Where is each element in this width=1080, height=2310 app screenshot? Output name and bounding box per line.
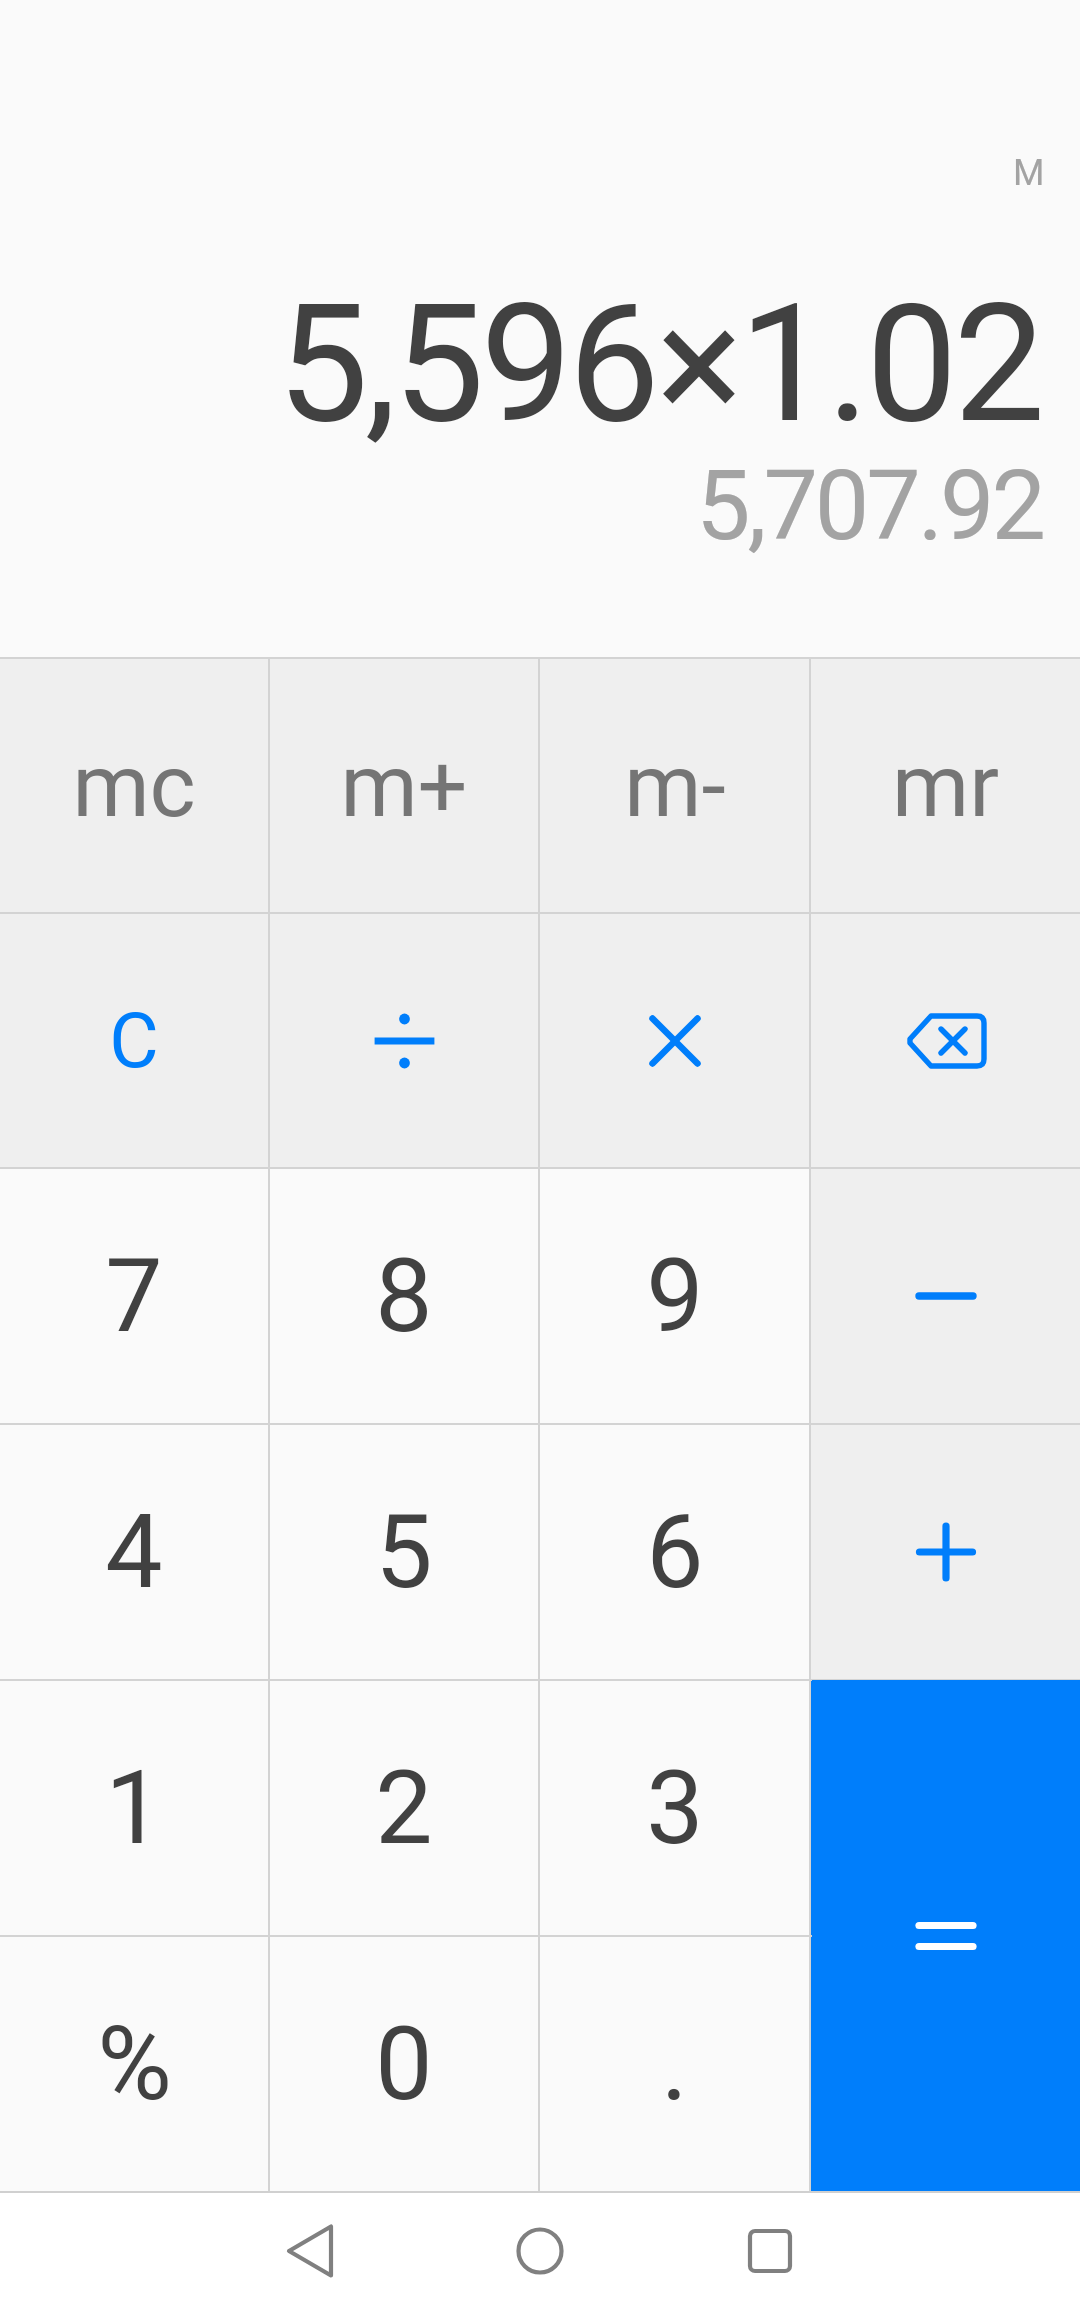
button[interactable]: %: [0, 1937, 268, 2191]
button[interactable]: 9: [540, 1169, 809, 1423]
button[interactable]: 5: [270, 1425, 538, 1679]
button[interactable]: 6: [540, 1425, 809, 1679]
staticText: mc: [72, 734, 196, 837]
staticText: 4: [105, 1492, 163, 1612]
button[interactable]: Back: [250, 2191, 370, 2310]
button[interactable]: 0: [270, 1937, 538, 2191]
button[interactable]: mr: [811, 659, 1080, 912]
button[interactable]: 4: [0, 1425, 268, 1679]
button[interactable]: Plus: [811, 1425, 1080, 1679]
button[interactable]: mc: [0, 659, 268, 912]
button[interactable]: Home: [480, 2191, 600, 2310]
staticText: M: [1013, 152, 1045, 194]
staticText: mr: [892, 734, 999, 837]
button[interactable]: Backspace: [811, 914, 1080, 1167]
staticText: 5,707.92: [696, 449, 1043, 563]
staticText: 5: [375, 1492, 433, 1612]
staticText: 0: [375, 2004, 433, 2124]
staticText: 8: [375, 1236, 433, 1356]
button[interactable]: Multiply: [540, 914, 809, 1167]
staticText: .: [661, 2004, 688, 2124]
button[interactable]: 8: [270, 1169, 538, 1423]
button[interactable]: m-: [540, 659, 809, 912]
staticText: 6: [646, 1492, 704, 1612]
button[interactable]: .: [540, 1937, 809, 2191]
button[interactable]: C: [0, 914, 268, 1167]
button[interactable]: 2: [270, 1681, 538, 1935]
button[interactable]: Recents: [710, 2191, 830, 2310]
staticText: 7: [105, 1236, 163, 1356]
button[interactable]: 3: [540, 1681, 809, 1935]
staticText: %: [97, 2004, 172, 2124]
staticText: m-: [624, 734, 726, 837]
staticText: 1: [105, 1748, 163, 1868]
staticText: C: [109, 996, 159, 1085]
staticText: m+: [340, 734, 468, 837]
staticText: 2: [375, 1748, 433, 1868]
staticText: 9: [646, 1236, 704, 1356]
button[interactable]: Divide: [270, 914, 538, 1167]
button[interactable]: 7: [0, 1169, 268, 1423]
staticText: 5,596×1.02: [277, 269, 1042, 460]
staticText: 3: [646, 1748, 704, 1868]
button[interactable]: Minus: [811, 1169, 1080, 1423]
button[interactable]: 1: [0, 1681, 268, 1935]
button[interactable]: Equals: [812, 1680, 1080, 2191]
button[interactable]: m+: [270, 659, 538, 912]
